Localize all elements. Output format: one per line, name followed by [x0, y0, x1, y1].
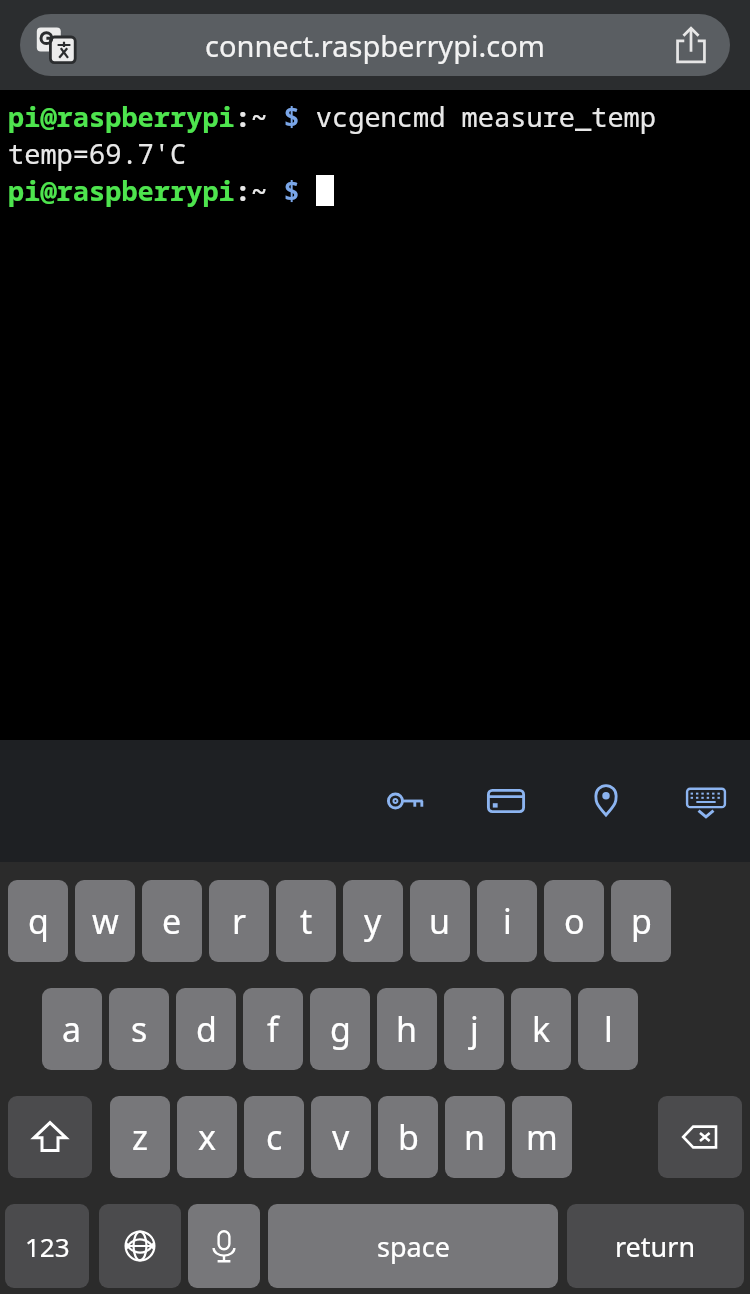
staticText: connect.raspberrypi.com: [205, 26, 545, 65]
button[interactable]: Passwords: [382, 777, 430, 825]
button[interactable]: b: [378, 1096, 438, 1178]
staticText: w: [92, 898, 119, 944]
button[interactable]: u: [410, 880, 470, 962]
button[interactable]: Hide keyboard: [682, 777, 730, 825]
button[interactable]: space: [268, 1204, 558, 1288]
staticText: pi@raspberrypi:~ $ vcgencmd measure_temp: [8, 98, 656, 135]
staticText: e: [162, 898, 182, 944]
staticText: u: [429, 898, 451, 944]
button[interactable]: s: [109, 988, 169, 1070]
button[interactable]: d: [176, 988, 236, 1070]
staticText: n: [464, 1114, 486, 1160]
staticText: j: [470, 1006, 479, 1052]
staticText: t: [300, 898, 313, 944]
button[interactable]: o: [544, 880, 604, 962]
button[interactable]: Translate: [20, 14, 730, 76]
staticText: a: [62, 1006, 82, 1052]
button[interactable]: w: [75, 880, 135, 962]
button[interactable]: c: [244, 1096, 304, 1178]
button[interactable]: y: [343, 880, 403, 962]
staticText: r: [232, 898, 247, 944]
staticText: s: [131, 1006, 148, 1052]
button[interactable]: k: [511, 988, 571, 1070]
button[interactable]: Location: [582, 777, 630, 825]
staticText: g: [330, 1006, 351, 1052]
button[interactable]: l: [578, 988, 638, 1070]
staticText: b: [398, 1114, 419, 1160]
staticText: 123: [25, 1229, 70, 1264]
button[interactable]: Translate: [36, 25, 76, 65]
staticText: i: [503, 898, 512, 944]
staticText: c: [266, 1114, 283, 1160]
staticText: o: [564, 898, 585, 944]
button[interactable]: q: [8, 880, 68, 962]
button[interactable]: e: [142, 880, 202, 962]
button[interactable]: h: [377, 988, 437, 1070]
staticText: h: [396, 1006, 418, 1052]
staticText: v: [332, 1114, 350, 1160]
button[interactable]: f: [243, 988, 303, 1070]
button[interactable]: Payment methods: [482, 777, 530, 825]
button[interactable]: j: [444, 988, 504, 1070]
staticText: return: [615, 1228, 696, 1265]
staticText: f: [267, 1006, 279, 1052]
button[interactable]: p: [611, 880, 671, 962]
button[interactable]: n: [445, 1096, 505, 1178]
staticText: q: [28, 898, 49, 944]
staticText: z: [132, 1114, 148, 1160]
button[interactable]: Backspace: [658, 1096, 742, 1178]
button[interactable]: a: [42, 988, 102, 1070]
button[interactable]: m: [512, 1096, 572, 1178]
staticText: l: [604, 1006, 613, 1052]
staticText: space: [377, 1228, 450, 1265]
button[interactable]: t: [276, 880, 336, 962]
button[interactable]: g: [310, 988, 370, 1070]
staticText: p: [631, 898, 652, 944]
staticText: k: [532, 1006, 551, 1052]
staticText: y: [364, 898, 382, 944]
button[interactable]: z: [110, 1096, 170, 1178]
staticText: d: [196, 1006, 217, 1052]
button[interactable]: Share: [670, 24, 712, 66]
button[interactable]: Shift: [8, 1096, 92, 1178]
staticText: pi@raspberrypi:~ $: [8, 172, 316, 209]
button[interactable]: return: [567, 1204, 744, 1288]
button[interactable]: x: [177, 1096, 237, 1178]
staticText: m: [526, 1114, 558, 1160]
button[interactable]: r: [209, 880, 269, 962]
staticText: temp=69.7'C: [8, 135, 187, 172]
button[interactable]: Dictate: [188, 1204, 260, 1288]
button[interactable]: Next keyboard: [99, 1204, 181, 1288]
button[interactable]: i: [477, 880, 537, 962]
staticText: x: [198, 1114, 216, 1160]
button[interactable]: v: [311, 1096, 371, 1178]
button[interactable]: 123: [5, 1204, 89, 1288]
